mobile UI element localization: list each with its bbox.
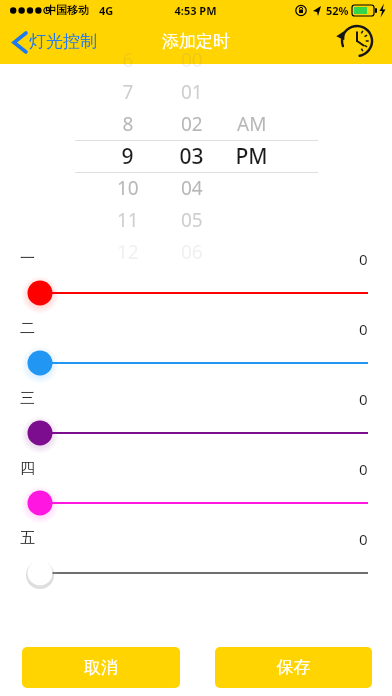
button[interactable]: Back to 灯光控制 [0,22,120,64]
button[interactable]: Minute picker [165,66,225,236]
button[interactable]: Timer history [336,22,386,64]
button[interactable]: 保存 [215,647,372,688]
button[interactable]: Slider 四 [14,482,378,524]
button[interactable]: Slider 二 [14,342,378,384]
button[interactable]: Hour picker [80,66,170,236]
button[interactable]: Slider 五 [14,552,378,594]
button[interactable]: Slider 三 [14,412,378,454]
button[interactable]: AM PM picker [225,66,295,236]
button[interactable]: 取消 [22,647,180,688]
button[interactable]: Slider 一 [14,272,378,314]
